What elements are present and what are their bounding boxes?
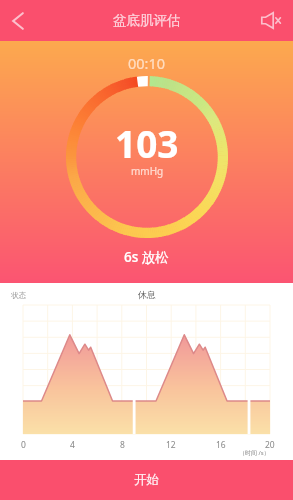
staticText: 12 bbox=[166, 439, 176, 451]
staticText: 盆底肌评估 bbox=[113, 12, 181, 29]
staticText: mmHg bbox=[131, 164, 164, 178]
staticText: 00:10 bbox=[128, 53, 166, 73]
button[interactable]: 开始 bbox=[0, 460, 293, 500]
button[interactable]: Mute sound bbox=[249, 0, 293, 41]
staticText: 16 bbox=[216, 439, 226, 451]
staticText: 0 bbox=[21, 439, 26, 451]
staticText: 状态 bbox=[11, 291, 26, 300]
staticText: 20 bbox=[265, 439, 275, 451]
staticText: （时间 /s） bbox=[239, 449, 270, 457]
button[interactable]: Back bbox=[0, 0, 36, 41]
staticText: 6s 放松 bbox=[124, 248, 169, 266]
staticText: 8 bbox=[120, 439, 125, 451]
staticText: 4 bbox=[70, 439, 75, 451]
staticText: 休息 bbox=[138, 289, 156, 300]
staticText: 开始 bbox=[134, 472, 159, 488]
staticText: 103 bbox=[115, 118, 179, 168]
